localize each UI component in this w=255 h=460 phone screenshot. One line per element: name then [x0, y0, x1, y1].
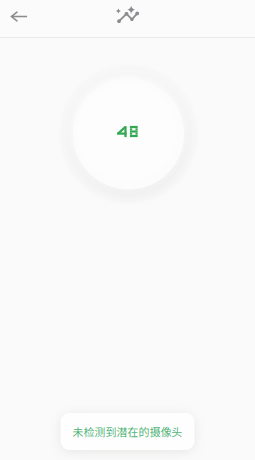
button[interactable]: Statistics	[107, 0, 147, 36]
staticText: 未检测到潜在的摄像头	[72, 424, 182, 439]
button[interactable]: 未检测到潜在的摄像头	[60, 413, 194, 450]
button[interactable]: Back	[0, 0, 38, 36]
